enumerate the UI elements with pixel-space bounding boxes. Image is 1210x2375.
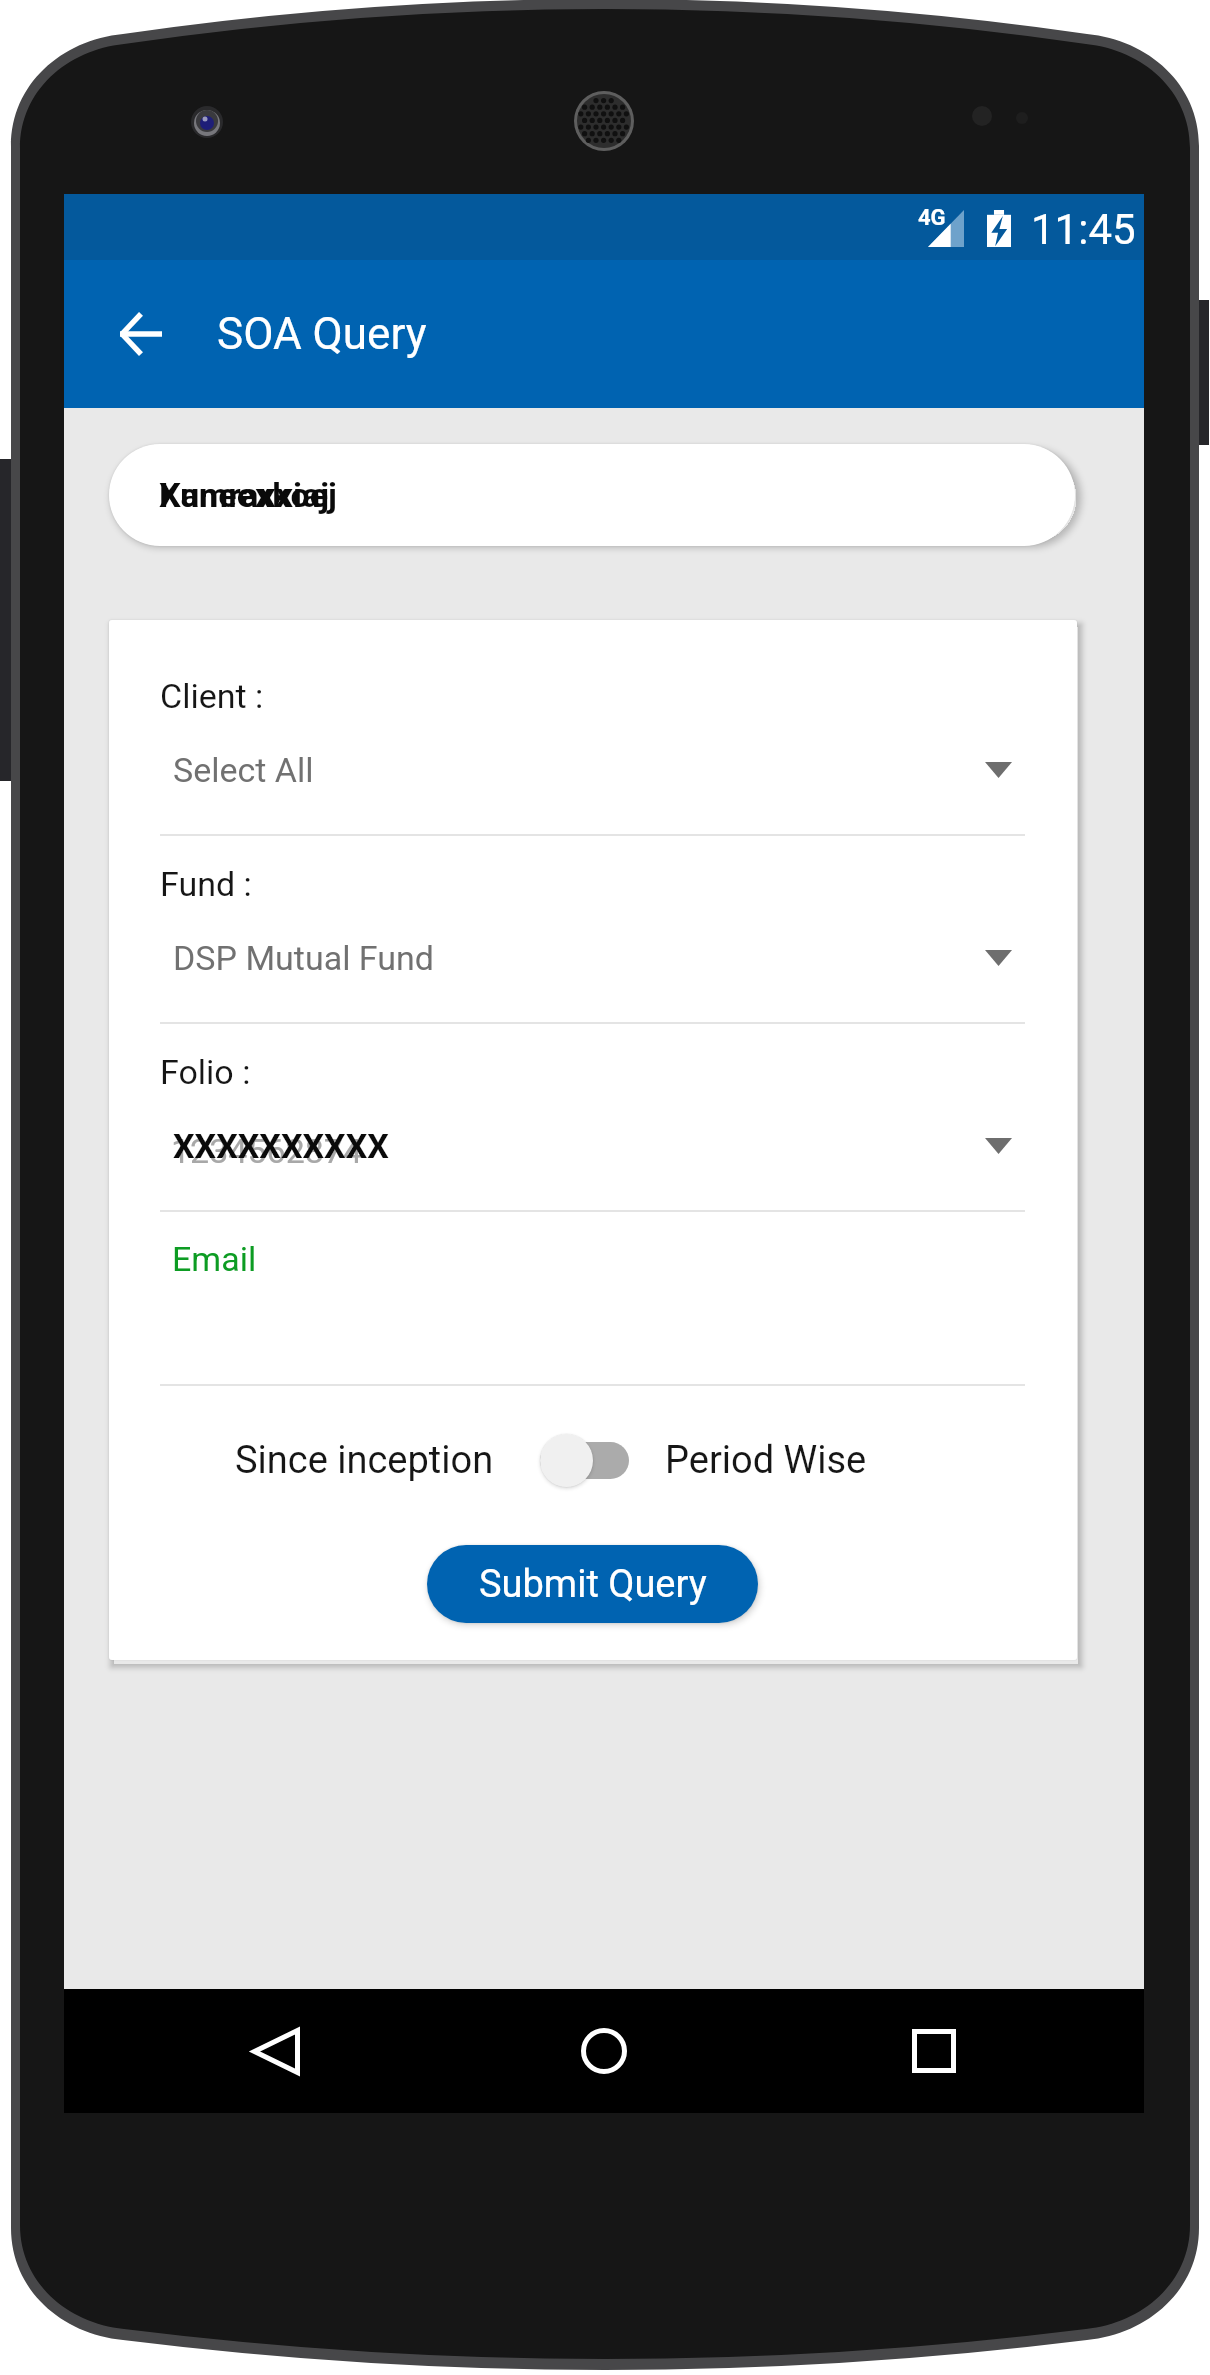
button[interactable]: Submit Query [427,1545,758,1623]
staticText: DSP Mutual Fund [173,938,434,978]
staticText: Select All [173,750,314,790]
staticText: Submit Query [479,1562,707,1607]
staticText: Kamraxxiaj [159,475,329,515]
button[interactable] [540,1432,629,1488]
staticText: SOA Query [217,308,427,360]
staticText: Since inception [235,1438,494,1483]
button[interactable]: Xuneexkoej [109,444,1075,546]
staticText: XXXXXXXXXX [173,1126,389,1166]
staticText: Client : [160,676,264,716]
button[interactable]: Recents [881,1998,987,2104]
staticText: 1234562874 [171,1131,363,1171]
button[interactable]: Back [96,289,186,379]
staticText: 4G [918,205,946,231]
button[interactable]: Back [223,1998,329,2104]
staticText: 11:45 [1031,205,1136,254]
staticText: Email [172,1239,257,1279]
staticText: Xuneexkoej [159,475,337,515]
button[interactable]: DSP Mutual Fund [159,932,1038,984]
staticText: Period Wise [665,1438,867,1483]
staticText: Folio : [160,1052,251,1092]
button[interactable]: 1234562874 [159,1120,1038,1172]
button[interactable]: Home [551,1998,657,2104]
staticText: Fund : [160,864,252,904]
button[interactable]: Select All [159,744,1038,796]
